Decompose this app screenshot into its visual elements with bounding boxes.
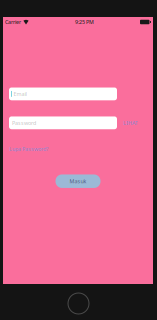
button[interactable]: LIHAT bbox=[122, 116, 139, 129]
staticText: 9:25 PM bbox=[75, 18, 94, 26]
button[interactable]: Lupa Password? bbox=[9, 144, 48, 153]
button[interactable]: Masuk bbox=[55, 174, 100, 188]
staticText: Lupa Password? bbox=[9, 145, 48, 152]
staticText: LIHAT bbox=[123, 119, 138, 126]
staticText: Masuk bbox=[69, 178, 86, 185]
staticText: Carrier bbox=[5, 18, 21, 26]
staticText: Password bbox=[12, 119, 36, 126]
staticText: Email bbox=[13, 90, 26, 97]
